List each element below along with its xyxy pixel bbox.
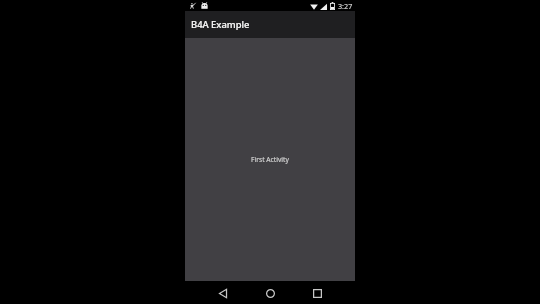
- staticText: 3:27: [338, 1, 353, 11]
- button[interactable]: Back: [210, 282, 236, 304]
- button[interactable]: Recent apps: [304, 282, 330, 304]
- staticText: First Activity: [251, 155, 289, 164]
- staticText: B4A Example: [191, 18, 250, 31]
- button[interactable]: Home: [257, 282, 283, 304]
